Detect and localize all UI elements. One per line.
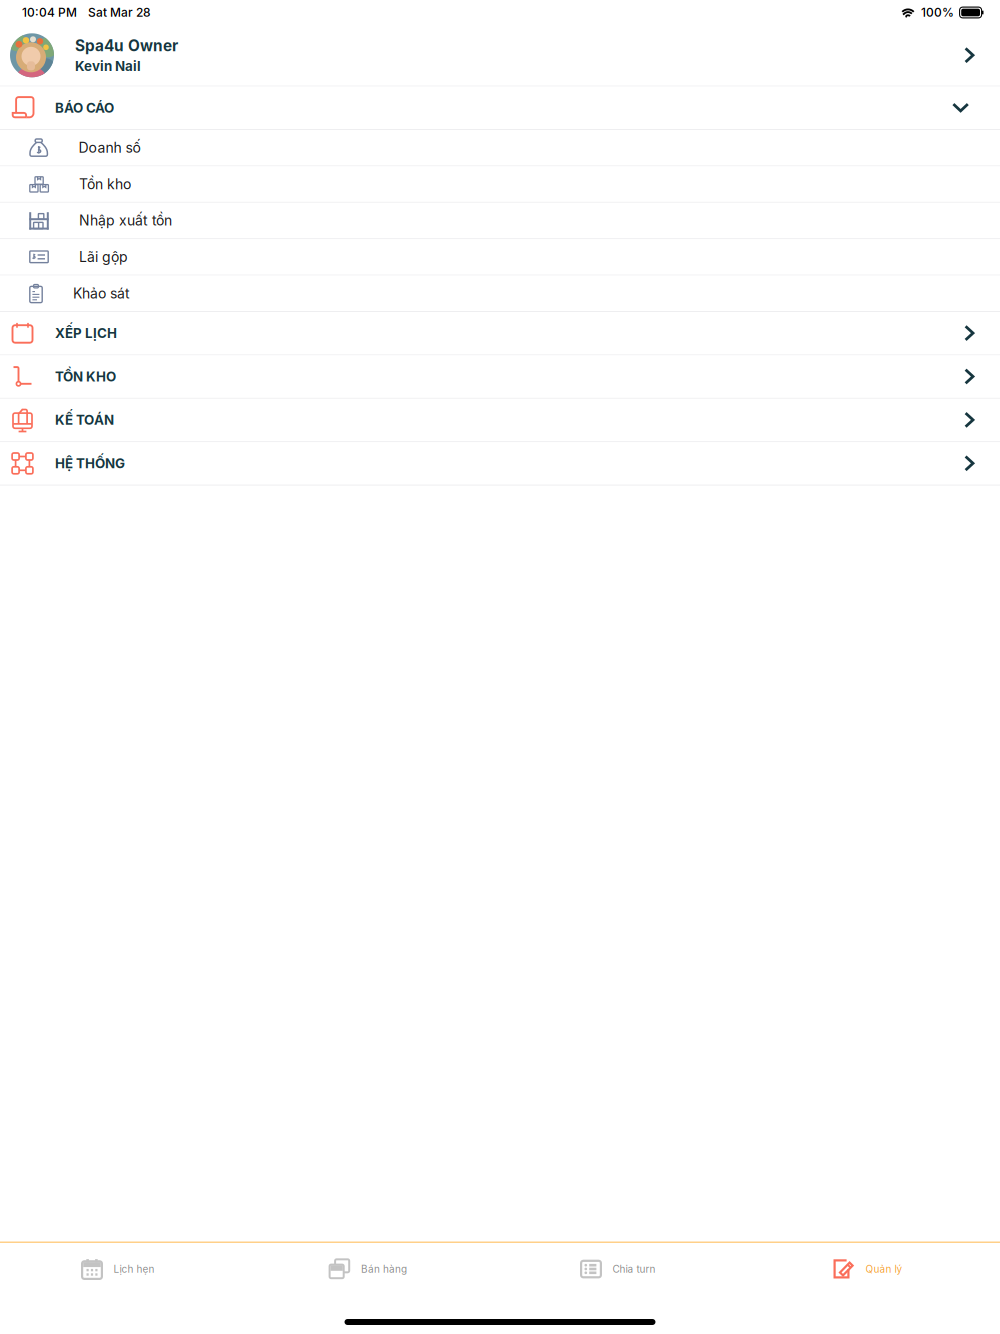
- staticText: Lãi gộp: [79, 248, 128, 265]
- button[interactable]: XẾP LỊCH: [0, 312, 1000, 354]
- button[interactable]: Tồn kho: [0, 166, 1000, 202]
- staticText: Khảo sát: [73, 285, 130, 302]
- staticText: TỒN KHO: [55, 368, 116, 385]
- button[interactable]: Khảo sát: [0, 276, 1000, 311]
- staticText: Quản lý: [865, 1263, 902, 1275]
- staticText: XẾP LỊCH: [55, 325, 117, 341]
- button[interactable]: Quản lý: [750, 1244, 1000, 1294]
- button[interactable]: Bán hàng: [250, 1244, 500, 1294]
- button[interactable]: Doanh số: [0, 130, 1000, 165]
- button[interactable]: TỒN KHO: [0, 355, 1000, 398]
- staticText: Lịch hẹn: [113, 1263, 154, 1275]
- button[interactable]: HỆ THỐNG: [0, 442, 1000, 485]
- staticText: Sat Mar 28: [88, 5, 151, 20]
- button[interactable]: Chia turn: [500, 1244, 750, 1294]
- button[interactable]: KẾ TOÁN: [0, 399, 1000, 441]
- staticText: BÁO CÁO: [55, 100, 114, 116]
- staticText: Chia turn: [612, 1263, 655, 1275]
- staticText: Tồn kho: [79, 176, 131, 192]
- button[interactable]: Nhập xuất tồn: [0, 203, 1000, 238]
- button[interactable]: Lãi gộp: [0, 239, 1000, 275]
- staticText: Nhập xuất tồn: [79, 212, 172, 229]
- staticText: Kevin Nail: [75, 58, 141, 74]
- staticText: Doanh số: [78, 139, 140, 156]
- staticText: KẾ TOÁN: [55, 412, 114, 428]
- button[interactable]: BÁO CÁO: [0, 87, 1000, 129]
- button[interactable]: Lịch hẹn: [0, 1244, 250, 1294]
- staticText: 10:04 PM: [22, 5, 77, 20]
- staticText: Spa4u Owner: [75, 36, 178, 55]
- staticText: Bán hàng: [361, 1263, 407, 1275]
- staticText: 100%: [921, 5, 954, 20]
- staticText: HỆ THỐNG: [55, 455, 125, 471]
- button[interactable]: Spa4u Owner: [0, 25, 1000, 86]
